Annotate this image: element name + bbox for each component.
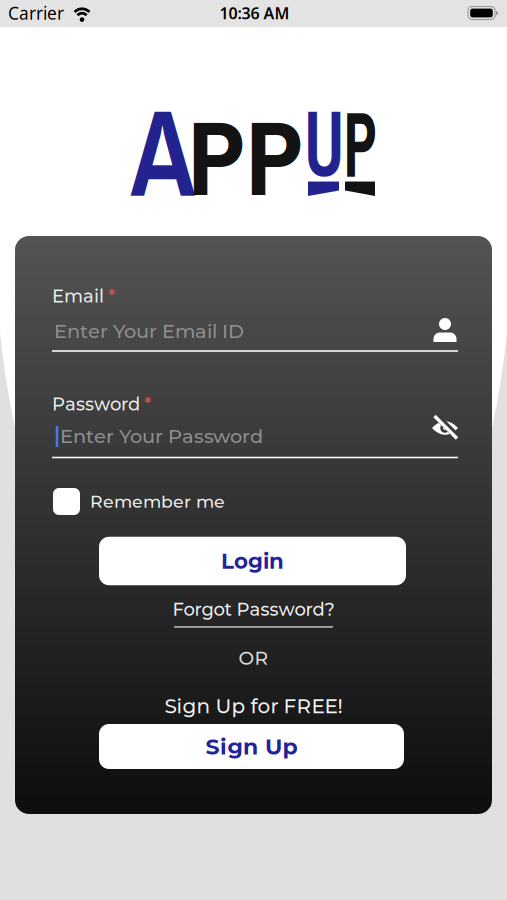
staticText: OR bbox=[238, 647, 268, 669]
button[interactable]: Login bbox=[99, 537, 406, 585]
button[interactable]: Enter Your Password bbox=[52, 414, 458, 460]
staticText: A bbox=[126, 69, 199, 235]
staticText: * bbox=[144, 393, 151, 415]
staticText: Carrier bbox=[8, 1, 64, 24]
staticText: Enter Your Password bbox=[60, 424, 263, 448]
button[interactable]: Enter Your Email ID bbox=[52, 310, 458, 356]
staticText: U bbox=[296, 79, 351, 205]
staticText: Forgot Password? bbox=[172, 598, 334, 620]
staticText: Email bbox=[52, 285, 104, 307]
staticText: PP bbox=[187, 86, 303, 228]
staticText: Sign Up for FREE! bbox=[164, 694, 342, 718]
staticText: Password bbox=[52, 393, 140, 415]
staticText: P bbox=[334, 81, 385, 206]
staticText: Sign Up bbox=[205, 733, 297, 760]
staticText: * bbox=[108, 285, 115, 307]
staticText: 10:36 AM bbox=[219, 2, 289, 24]
button[interactable]: Sign Up bbox=[99, 724, 404, 769]
staticText: Remember me bbox=[90, 491, 225, 512]
button[interactable]: Remember me bbox=[52, 486, 458, 516]
staticText: Login bbox=[221, 548, 284, 574]
button[interactable]: Forgot Password? bbox=[172, 598, 334, 628]
staticText: Enter Your Email ID bbox=[54, 319, 244, 343]
